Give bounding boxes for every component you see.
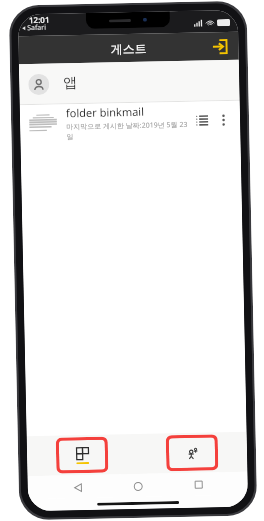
- button[interactable]: 더보기: [212, 109, 234, 131]
- button[interactable]: 뒤로: [66, 476, 89, 498]
- staticText: 앱: [63, 74, 77, 92]
- staticText: Safari: [27, 23, 46, 33]
- button[interactable]: 앱: [59, 440, 105, 471]
- button[interactable]: 최근 앱: [187, 473, 210, 496]
- staticText: 마지막으로 게시한 날짜:2019년 5월 23일: [66, 120, 192, 141]
- staticText: folder binkmail: [66, 104, 145, 120]
- button[interactable]: 홈: [126, 475, 149, 497]
- staticText: 게스트: [110, 41, 147, 56]
- button[interactable]: 프로필: [28, 74, 49, 95]
- button[interactable]: 앱: [63, 74, 77, 92]
- button[interactable]: 목록 보기: [192, 110, 212, 131]
- button[interactable]: 로그인: [208, 35, 231, 57]
- staticText: 12:01: [29, 14, 50, 25]
- button[interactable]: 사용자: [169, 437, 215, 468]
- button[interactable]: folder binkmail: [20, 101, 240, 143]
